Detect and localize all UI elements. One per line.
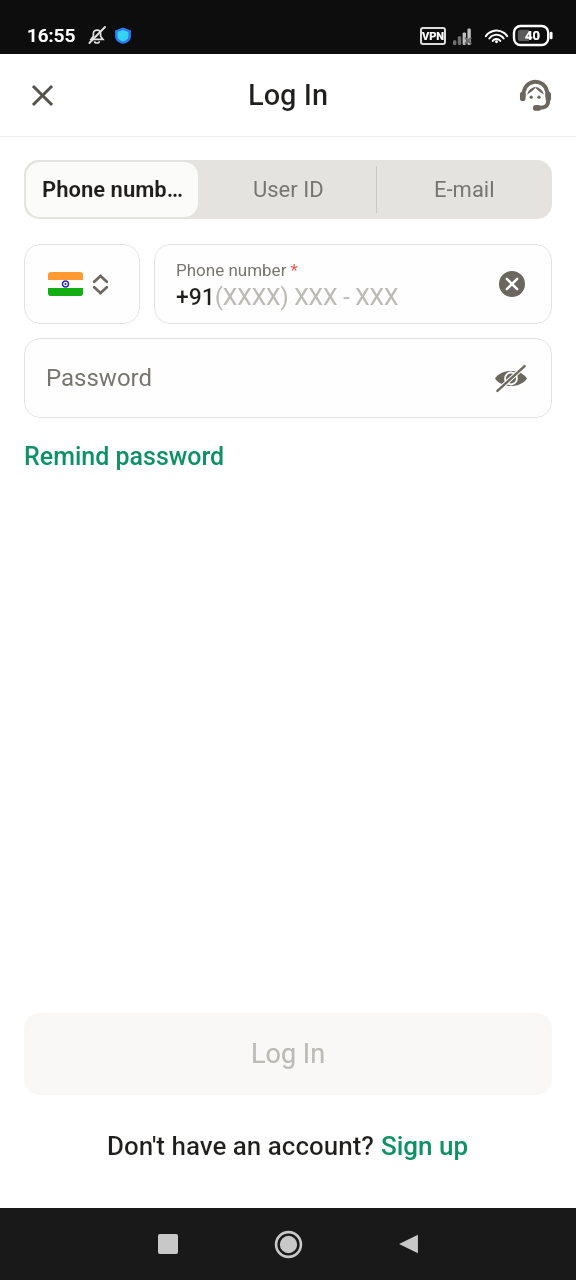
staticText: +91(XXXX) XXX - XXX [176,284,399,311]
button[interactable]: Recents [132,1208,204,1280]
staticText: E-mail [434,177,495,203]
staticText: 40 [525,28,540,43]
staticText: 16:55 [27,24,76,46]
staticText: Remind password [24,442,225,471]
button[interactable]: E-mail [376,160,552,219]
button[interactable]: Remind password [24,442,225,471]
button[interactable]: Close [20,73,64,117]
staticText: Phone number * [176,260,298,280]
staticText: Don't have an account? [107,1131,381,1161]
staticText: User ID [253,177,324,203]
button[interactable]: Password [24,338,552,418]
button[interactable]: Home [252,1208,324,1280]
staticText: Phone numb… [42,177,183,203]
button[interactable]: Support [513,73,557,117]
button[interactable]: Phone numb… [26,162,198,217]
button[interactable]: Log In [24,1013,552,1095]
staticText: Log In [251,1038,326,1070]
button[interactable]: Back [372,1208,444,1280]
staticText: VPN [422,30,445,43]
button[interactable]: Select country code [24,244,140,324]
button[interactable]: User ID [200,160,376,219]
button[interactable]: Sign up [381,1131,469,1161]
button[interactable]: Show password [493,360,529,396]
button[interactable]: Clear [497,269,527,299]
staticText: Log In [248,78,329,112]
button[interactable]: Phone number * [154,244,552,324]
staticText: Password [46,364,153,392]
